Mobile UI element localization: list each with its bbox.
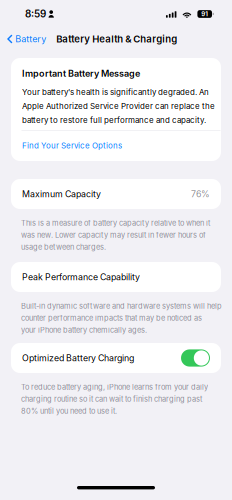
staticText: your iPhone battery chemically ages. (21, 325, 147, 334)
staticText: Maximum Capacity (22, 189, 101, 199)
staticText: Built-in dynamic software and hardware s… (21, 301, 222, 310)
staticText: Apple Authorized Service Provider can re… (22, 101, 215, 111)
staticText: 76% (191, 189, 210, 199)
staticText: usage between charges. (21, 242, 106, 251)
staticText: This is a measure of battery capacity re… (21, 218, 210, 227)
staticText: was new. Lower capacity may result in fe… (21, 230, 206, 239)
staticText: charging routine so it can wait to finis… (21, 394, 202, 403)
staticText: 91 (201, 10, 208, 18)
staticText: Your battery's health is significantly d… (22, 87, 209, 97)
staticText: counter performance impacts that may be … (21, 313, 202, 322)
staticText: Important Battery Message (22, 68, 140, 79)
staticText: Peak Performance Capability (22, 272, 140, 282)
staticText: Battery (15, 33, 46, 44)
staticText: To reduce battery aging, iPhone learns f… (21, 382, 208, 391)
button[interactable]: Find Your Service Options (22, 135, 138, 156)
staticText: 8:59 (25, 8, 46, 20)
button[interactable]: Optimized Battery Charging (181, 349, 210, 367)
staticText: battery to restore full performance and … (22, 115, 206, 125)
staticText: Battery Health & Charging (56, 33, 177, 45)
staticText: 80% until you need to use it. (21, 406, 117, 415)
staticText: Optimized Battery Charging (22, 353, 134, 363)
staticText: Find Your Service Options (22, 141, 122, 150)
button[interactable]: Battery (0, 27, 50, 51)
